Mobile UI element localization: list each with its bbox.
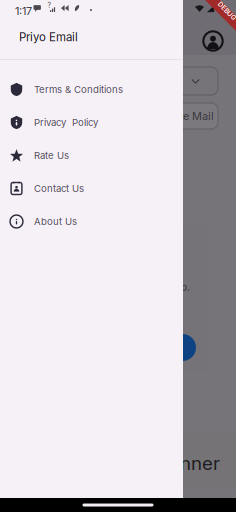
button[interactable]: About Us [0,205,183,238]
staticText: te Mail [180,109,214,123]
staticText: nner [180,452,220,475]
staticText: ? [47,1,51,9]
staticText: About Us [34,216,77,227]
button[interactable]: Privacy Policy [0,106,183,139]
button[interactable]: Terms & Conditions [0,73,183,106]
button[interactable]: Account [198,26,228,56]
staticText: Priyo Email [19,30,78,44]
staticText: Privacy Policy [34,117,98,128]
staticText: DEBUG [215,7,236,15]
staticText: b. [181,281,190,293]
staticText: Rate Us [34,150,69,161]
staticText: Contact Us [34,183,84,194]
staticText: Terms & Conditions [34,84,123,95]
button[interactable]: Contact Us [0,172,183,205]
button[interactable]: Rate Us [0,139,183,172]
staticText: 1:17 [15,4,32,18]
